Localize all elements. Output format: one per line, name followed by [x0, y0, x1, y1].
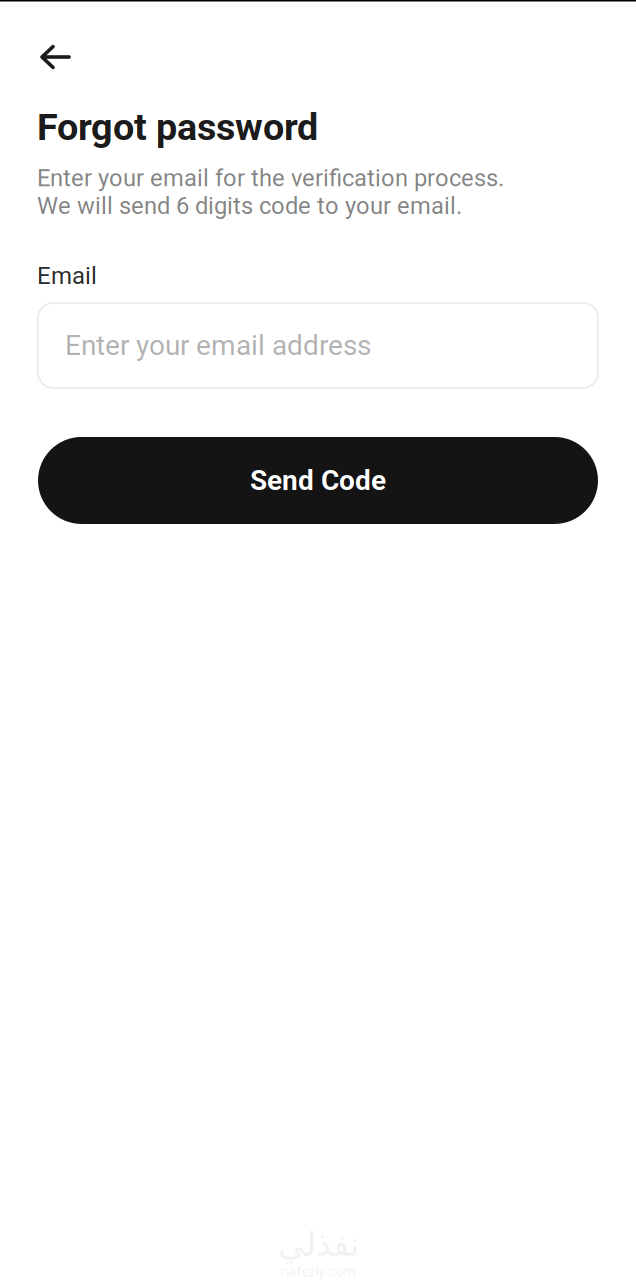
button[interactable]: Send Code	[38, 437, 598, 524]
staticText: Forgot password	[37, 105, 318, 149]
staticText: nafezly.com	[280, 1264, 355, 1280]
staticText: Enter your email address	[65, 329, 371, 362]
staticText: نفذلي	[277, 1225, 358, 1264]
staticText: Email	[37, 262, 97, 290]
staticText: Send Code	[250, 464, 386, 497]
staticText: Enter your email for the verification pr…	[37, 164, 504, 220]
button[interactable]: Back	[28, 29, 84, 85]
button[interactable]: Enter your email address	[38, 303, 598, 388]
